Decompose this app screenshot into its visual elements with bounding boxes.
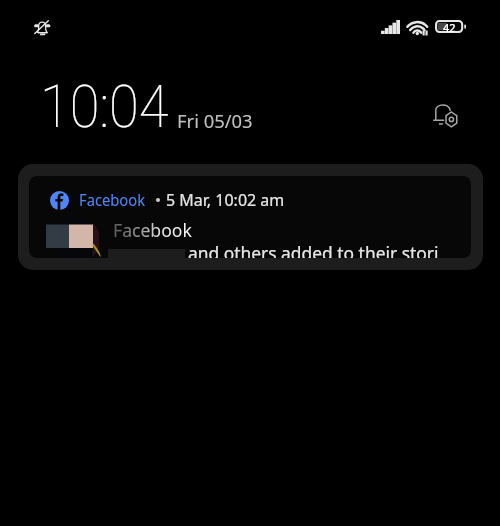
staticText: Facebook bbox=[79, 189, 145, 211]
staticText: 10:04 bbox=[40, 72, 169, 141]
staticText: Facebook bbox=[113, 218, 192, 242]
staticText: 5 Mar, 10:02 am bbox=[166, 189, 285, 211]
staticText: 42 bbox=[443, 20, 456, 33]
button[interactable]: Notifications silenced bbox=[34, 20, 51, 36]
staticText: and others added to their stori bbox=[188, 241, 439, 258]
button[interactable]: Facebook bbox=[29, 176, 471, 258]
staticText: Fri 05/03 bbox=[177, 108, 253, 133]
button[interactable]: Notification settings bbox=[433, 103, 458, 127]
